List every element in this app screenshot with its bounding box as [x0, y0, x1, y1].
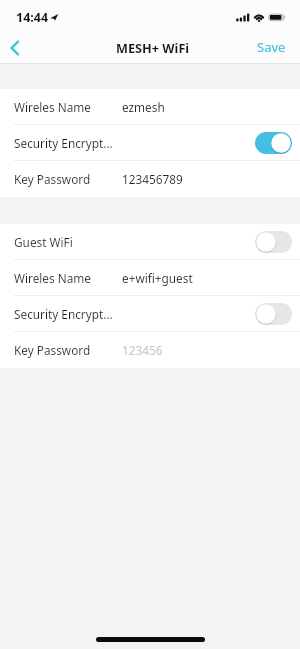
staticText: 123456789 — [122, 171, 183, 187]
staticText: Key Password — [14, 171, 91, 187]
staticText: 14:44 — [16, 9, 49, 26]
button[interactable]: Key Password — [0, 332, 300, 368]
button[interactable]: Security Encrypt... — [0, 125, 300, 161]
staticText: Save — [257, 38, 286, 56]
button[interactable]: Wireles Name — [0, 260, 300, 296]
staticText: Guest WiFi — [14, 234, 73, 250]
button[interactable]: Toggle on — [255, 132, 292, 154]
staticText: Key Password — [14, 342, 91, 358]
staticText: Security Encrypt... — [14, 306, 113, 322]
staticText: 123456 — [122, 342, 163, 358]
button[interactable]: Back — [0, 30, 30, 64]
button[interactable]: Wireles Name — [0, 89, 300, 125]
button[interactable]: Security Encrypt... — [0, 296, 300, 332]
staticText: MESH+ WiFi — [116, 39, 190, 56]
staticText: Wireles Name — [14, 270, 91, 286]
button[interactable]: Toggle off — [255, 231, 292, 253]
button[interactable]: Guest WiFi — [0, 224, 300, 260]
staticText: ezmesh — [122, 99, 165, 115]
button[interactable]: Key Password — [0, 161, 300, 197]
staticText: Security Encrypt... — [14, 135, 113, 151]
staticText: e+wifi+guest — [122, 270, 193, 286]
staticText: Wireles Name — [14, 99, 91, 115]
button[interactable]: Save — [243, 32, 300, 62]
button[interactable]: Toggle off — [255, 303, 292, 325]
